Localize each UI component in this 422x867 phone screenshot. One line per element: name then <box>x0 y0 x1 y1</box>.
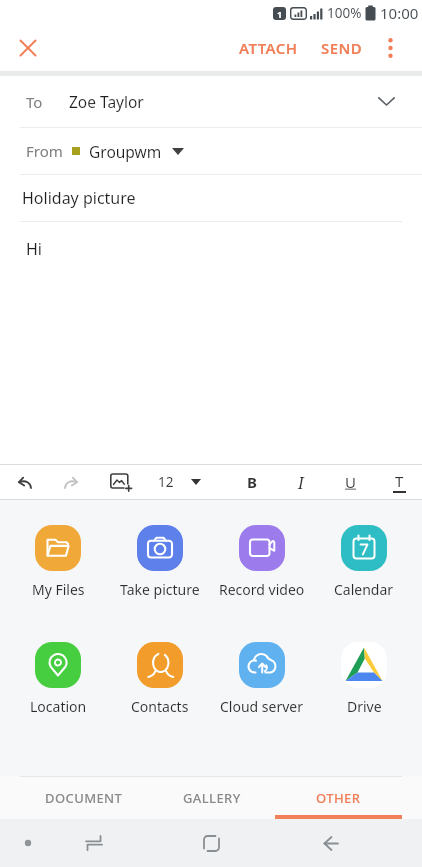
button[interactable]: U <box>333 465 367 499</box>
staticText: Location <box>30 697 87 716</box>
button[interactable] <box>12 32 44 64</box>
button[interactable] <box>379 37 401 59</box>
button[interactable]: Calendar <box>313 525 415 599</box>
staticText: Cloud server <box>220 697 304 716</box>
staticText: I <box>298 472 304 493</box>
staticText: Holiday picture <box>22 187 136 209</box>
staticText: T <box>395 471 404 491</box>
staticText: Contacts <box>131 697 189 716</box>
staticText: OTHER <box>316 789 361 807</box>
button[interactable]: SEND <box>321 38 363 58</box>
button[interactable]: Cloud server <box>211 642 313 716</box>
button[interactable]: Contacts <box>109 642 211 716</box>
button[interactable] <box>74 819 114 867</box>
staticText: ATTACH <box>239 38 298 58</box>
button[interactable]: From <box>0 128 422 175</box>
button[interactable]: Holiday picture <box>0 175 422 222</box>
staticText: Record video <box>219 580 305 599</box>
button[interactable]: I <box>284 465 318 499</box>
staticText: From <box>26 141 63 161</box>
staticText: Groupwm <box>89 141 162 162</box>
button[interactable] <box>55 465 89 499</box>
staticText: SEND <box>321 38 363 58</box>
button[interactable]: Record video <box>211 525 313 599</box>
staticText: My Files <box>32 580 85 599</box>
staticText: 1 <box>277 8 283 20</box>
button[interactable] <box>310 819 350 867</box>
staticText: Zoe Taylor <box>69 91 144 112</box>
button[interactable]: OTHER <box>275 776 402 819</box>
button[interactable]: B <box>235 465 269 499</box>
staticText: DOCUMENT <box>45 789 123 807</box>
button[interactable]: ATTACH <box>239 38 298 58</box>
staticText: 10:00 <box>380 3 419 23</box>
button[interactable]: Drive <box>313 642 415 716</box>
staticText: U <box>345 472 356 492</box>
button[interactable]: DOCUMENT <box>20 776 148 819</box>
staticText: Take picture <box>120 580 200 599</box>
staticText: B <box>247 472 257 492</box>
staticText: 12 <box>158 473 174 491</box>
button[interactable]: Take picture <box>109 525 211 599</box>
button[interactable]: GALLERY <box>148 776 275 819</box>
staticText: GALLERY <box>183 789 241 807</box>
staticText: 100% <box>327 4 362 22</box>
button[interactable]: Location <box>7 642 109 716</box>
button[interactable]: To <box>0 76 422 128</box>
staticText: Calendar <box>334 580 394 599</box>
button[interactable]: T <box>382 465 416 499</box>
staticText: Hi <box>26 238 42 260</box>
button[interactable] <box>7 465 41 499</box>
button[interactable] <box>104 465 138 499</box>
button[interactable] <box>186 465 206 499</box>
staticText: To <box>26 92 43 112</box>
button[interactable]: My Files <box>7 525 109 599</box>
button[interactable]: 12 <box>153 465 179 499</box>
staticText: Drive <box>347 697 382 716</box>
button[interactable] <box>191 819 231 867</box>
